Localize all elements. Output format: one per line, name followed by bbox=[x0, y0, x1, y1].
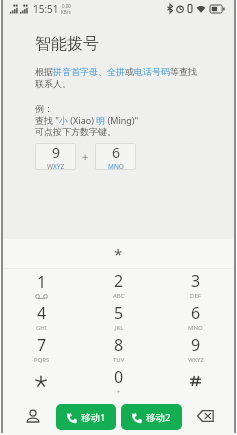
button[interactable]: 3 bbox=[157, 269, 234, 302]
staticText: + bbox=[82, 149, 89, 164]
staticText: 4 bbox=[37, 302, 47, 324]
staticText: 例： bbox=[35, 103, 53, 114]
staticText: 15:51 bbox=[33, 2, 59, 16]
button[interactable]: 8 bbox=[80, 334, 157, 366]
staticText: WXYZ bbox=[47, 162, 65, 170]
staticText: 8 bbox=[114, 334, 124, 356]
button[interactable] bbox=[157, 366, 234, 398]
staticText: + bbox=[117, 388, 121, 396]
staticText: 9 bbox=[191, 334, 201, 356]
button[interactable]: 9 bbox=[157, 334, 234, 366]
staticText: 0.00 bbox=[62, 3, 71, 9]
button[interactable]: 6 bbox=[157, 302, 234, 334]
button[interactable]: 5 bbox=[80, 302, 157, 334]
staticText: PQRS bbox=[34, 356, 50, 364]
staticText: MNO bbox=[188, 324, 203, 332]
button[interactable]: 移动1 bbox=[56, 404, 116, 430]
staticText: 7 bbox=[37, 334, 47, 356]
staticText: MNO bbox=[108, 162, 124, 170]
button[interactable]: 7 bbox=[3, 334, 80, 366]
staticText: 1 bbox=[37, 271, 47, 293]
staticText: WXYZ bbox=[188, 356, 204, 364]
staticText: DEF bbox=[190, 292, 201, 300]
staticText: 6 bbox=[112, 143, 121, 162]
staticText: * bbox=[114, 244, 123, 264]
staticText: 2 bbox=[114, 270, 124, 292]
staticText: KB/s bbox=[61, 9, 71, 15]
button[interactable]: 6 bbox=[95, 143, 136, 170]
staticText: JKL bbox=[115, 324, 124, 332]
button[interactable]: 2 bbox=[80, 269, 157, 302]
staticText: 0 bbox=[114, 366, 124, 388]
staticText: GHI bbox=[36, 324, 47, 332]
staticText: 3 bbox=[191, 270, 201, 292]
button[interactable]: 移动2 bbox=[121, 404, 182, 430]
staticText: 6 bbox=[191, 302, 201, 324]
staticText: 根据拼音首字母、全拼或电话号码等查找联系人。 bbox=[35, 66, 204, 90]
staticText: 移动2 bbox=[146, 411, 171, 424]
button[interactable]: 1 bbox=[3, 269, 80, 302]
button[interactable] bbox=[3, 366, 80, 398]
staticText: 智能拨号 bbox=[35, 34, 99, 54]
button[interactable]: 0 bbox=[80, 366, 157, 398]
staticText: 5 bbox=[114, 302, 124, 324]
staticText: 移动1 bbox=[81, 411, 106, 424]
button[interactable]: 4 bbox=[3, 302, 80, 334]
staticText: 9 bbox=[52, 143, 61, 162]
button[interactable]: Backspace bbox=[182, 398, 234, 435]
button[interactable]: Contacts bbox=[3, 398, 56, 435]
staticText: 可点按下方数字键。 bbox=[35, 126, 116, 137]
staticText: 查找 "小 (Xiao) 明 (Ming)" bbox=[35, 114, 139, 126]
staticText: TUV bbox=[113, 356, 125, 364]
button[interactable]: 9 bbox=[35, 143, 76, 170]
staticText: ABC bbox=[113, 292, 125, 300]
